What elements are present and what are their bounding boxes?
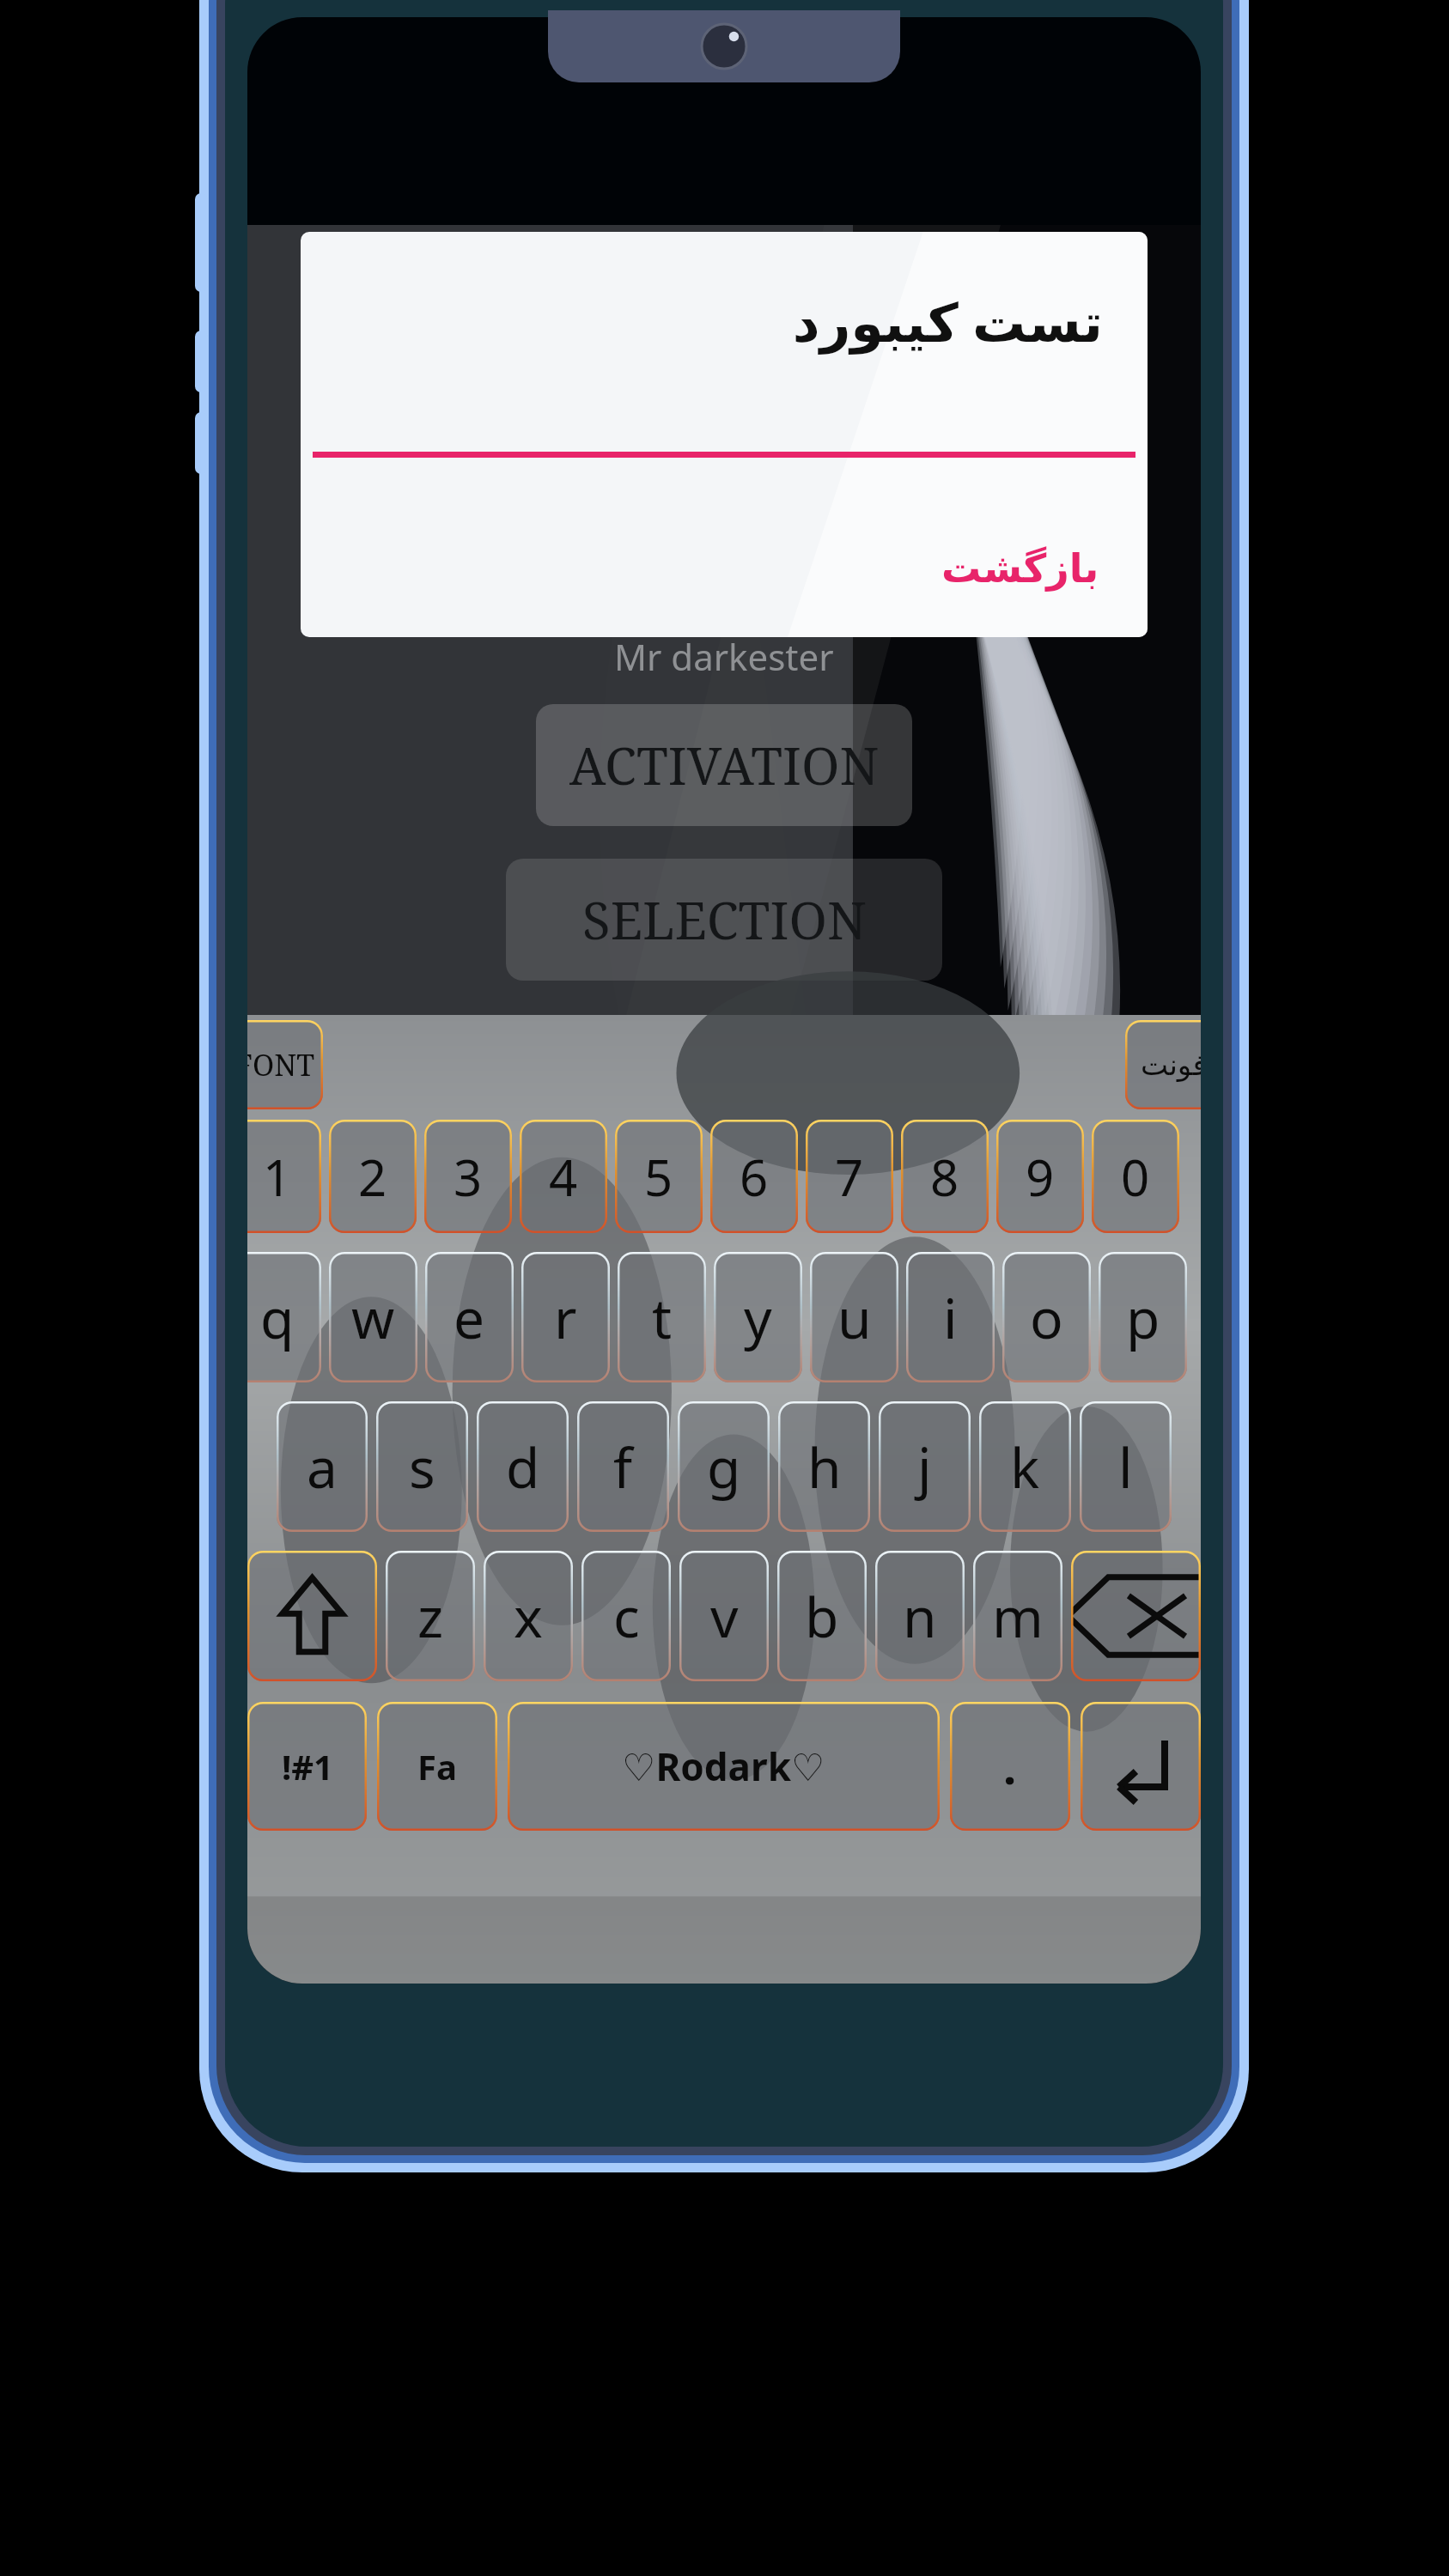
- staticText: 8: [930, 1143, 959, 1211]
- button[interactable]: g: [678, 1401, 770, 1532]
- staticText: .: [1003, 1735, 1017, 1798]
- button[interactable]: r: [521, 1252, 610, 1382]
- button[interactable]: l: [1080, 1401, 1172, 1532]
- staticText: 0: [1121, 1143, 1150, 1211]
- button[interactable]: b: [777, 1551, 867, 1681]
- button[interactable]: 0: [1092, 1120, 1179, 1233]
- button[interactable]: فونت: [1125, 1020, 1201, 1109]
- button[interactable]: h: [778, 1401, 870, 1532]
- button[interactable]: 4: [520, 1120, 607, 1233]
- button[interactable]: s: [376, 1401, 468, 1532]
- button[interactable]: Enter: [1081, 1702, 1201, 1831]
- staticText: m: [992, 1579, 1044, 1654]
- button[interactable]: 9: [996, 1120, 1084, 1233]
- button[interactable]: Backspace: [1071, 1551, 1201, 1681]
- staticText: u: [837, 1280, 872, 1355]
- button[interactable]: FONT: [247, 1020, 323, 1109]
- button[interactable]: 6: [710, 1120, 798, 1233]
- button[interactable]: c: [581, 1551, 671, 1681]
- staticText: h: [807, 1430, 842, 1504]
- staticText: 7: [835, 1143, 864, 1211]
- staticText: l: [1118, 1430, 1133, 1504]
- button[interactable]: 5: [615, 1120, 703, 1233]
- staticText: p: [1126, 1280, 1160, 1355]
- staticText: k: [1010, 1430, 1040, 1504]
- staticText: z: [417, 1579, 444, 1654]
- button[interactable]: v: [679, 1551, 769, 1681]
- staticText: g: [707, 1430, 741, 1504]
- button[interactable]: j: [879, 1401, 971, 1532]
- staticText: Fa: [417, 1743, 457, 1789]
- button[interactable]: w: [329, 1252, 417, 1382]
- staticText: 1: [263, 1143, 292, 1211]
- staticText: b: [805, 1579, 839, 1654]
- button[interactable]: p: [1099, 1252, 1187, 1382]
- staticText: w: [351, 1280, 395, 1355]
- staticText: q: [260, 1280, 295, 1355]
- button[interactable]: Fa: [377, 1702, 497, 1831]
- button[interactable]: x: [484, 1551, 573, 1681]
- button[interactable]: 3: [424, 1120, 512, 1233]
- staticText: تست کیبورد: [301, 285, 1103, 357]
- button[interactable]: 1: [247, 1120, 321, 1233]
- staticText: e: [454, 1280, 485, 1355]
- button[interactable]: n: [875, 1551, 965, 1681]
- staticText: t: [652, 1280, 673, 1355]
- button[interactable]: f: [577, 1401, 669, 1532]
- button[interactable]: u: [810, 1252, 898, 1382]
- button[interactable]: z: [386, 1551, 475, 1681]
- button[interactable]: ACTIVATION: [536, 704, 912, 826]
- staticText: 4: [549, 1143, 578, 1211]
- staticText: n: [903, 1579, 937, 1654]
- button[interactable]: e: [425, 1252, 514, 1382]
- button[interactable]: o: [1002, 1252, 1091, 1382]
- button[interactable]: بازگشت: [301, 520, 1148, 617]
- button[interactable]: !#1: [247, 1702, 367, 1831]
- staticText: 6: [740, 1143, 769, 1211]
- staticText: v: [710, 1579, 739, 1654]
- staticText: 3: [454, 1143, 483, 1211]
- staticText: f: [613, 1430, 633, 1504]
- staticText: d: [506, 1430, 540, 1504]
- staticText: a: [307, 1430, 338, 1504]
- button[interactable]: t: [618, 1252, 706, 1382]
- staticText: فونت: [1141, 1048, 1201, 1082]
- staticText: i: [943, 1280, 958, 1355]
- button[interactable]: k: [979, 1401, 1071, 1532]
- button[interactable]: y: [714, 1252, 802, 1382]
- button[interactable]: ♡Rodark♡: [508, 1702, 940, 1831]
- button[interactable]: m: [973, 1551, 1062, 1681]
- staticText: 9: [1026, 1143, 1055, 1211]
- staticText: ACTIVATION: [569, 730, 880, 800]
- staticText: x: [514, 1579, 543, 1654]
- button[interactable]: SELECTION: [506, 859, 942, 981]
- staticText: r: [554, 1280, 577, 1355]
- button[interactable]: 7: [806, 1120, 893, 1233]
- button[interactable]: i: [906, 1252, 995, 1382]
- staticText: Mr darkester: [614, 632, 834, 681]
- staticText: 2: [358, 1143, 387, 1211]
- staticText: !#1: [282, 1743, 333, 1789]
- button[interactable]: q: [247, 1252, 321, 1382]
- staticText: ♡Rodark♡: [622, 1741, 825, 1792]
- button[interactable]: a: [277, 1401, 368, 1532]
- staticText: j: [917, 1430, 932, 1504]
- button[interactable]: 2: [329, 1120, 417, 1233]
- staticText: SELECTION: [582, 884, 867, 955]
- staticText: c: [613, 1579, 640, 1654]
- button[interactable]: Shift: [247, 1551, 377, 1681]
- staticText: s: [409, 1430, 435, 1504]
- button[interactable]: d: [477, 1401, 569, 1532]
- staticText: FONT: [247, 1045, 315, 1084]
- staticText: 5: [644, 1143, 673, 1211]
- staticText: بازگشت: [941, 545, 1099, 592]
- staticText: y: [744, 1280, 772, 1355]
- staticText: o: [1030, 1280, 1063, 1355]
- button[interactable]: 8: [901, 1120, 989, 1233]
- button[interactable]: .: [950, 1702, 1070, 1831]
